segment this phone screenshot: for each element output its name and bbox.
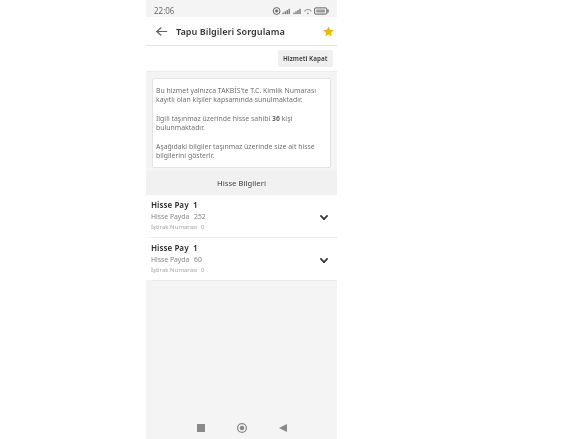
staticText: Hisse Payda	[151, 212, 190, 221]
staticText: Bu hizmet yalnızca TAKBİS'te T.C. Kimlik…	[156, 86, 317, 104]
button[interactable]: Expand	[317, 253, 331, 267]
button[interactable]: Back	[153, 23, 169, 39]
staticText: 0	[201, 266, 205, 274]
button[interactable]: Back	[272, 417, 294, 439]
staticText: 60	[194, 255, 202, 264]
button[interactable]: Home	[231, 417, 253, 439]
staticText: Hisse Pay	[151, 242, 189, 253]
staticText: 1	[193, 199, 198, 210]
staticText: Hisse Bilgileri	[217, 178, 266, 188]
staticText: Hisse Payda	[151, 255, 190, 264]
staticText: 1	[193, 242, 198, 253]
staticText: İştirak Numarası	[151, 266, 198, 274]
staticText: İştirak Numarası	[151, 223, 198, 231]
button[interactable]: Favorite	[320, 23, 336, 39]
staticText: Hisse Pay	[151, 199, 189, 210]
button[interactable]: Hizmeti Kapat	[278, 50, 333, 67]
staticText: Tapu Bilgileri Sorgulama	[176, 25, 285, 37]
staticText: 252	[194, 212, 206, 221]
staticText: İlgili taşınmaz üzerinde hisse sahibi 36…	[156, 114, 293, 132]
button[interactable]: Expand	[317, 210, 331, 224]
button[interactable]: Hisse Pay	[146, 195, 337, 237]
staticText: 0	[201, 223, 205, 231]
button[interactable]: Hisse Pay	[146, 238, 337, 280]
staticText: 22:06	[154, 5, 175, 16]
staticText: Aşağıdaki bilgiler taşınmaz üzerinde siz…	[156, 142, 315, 160]
staticText: Hizmeti Kapat	[283, 54, 328, 63]
button[interactable]: Recents	[190, 417, 212, 439]
